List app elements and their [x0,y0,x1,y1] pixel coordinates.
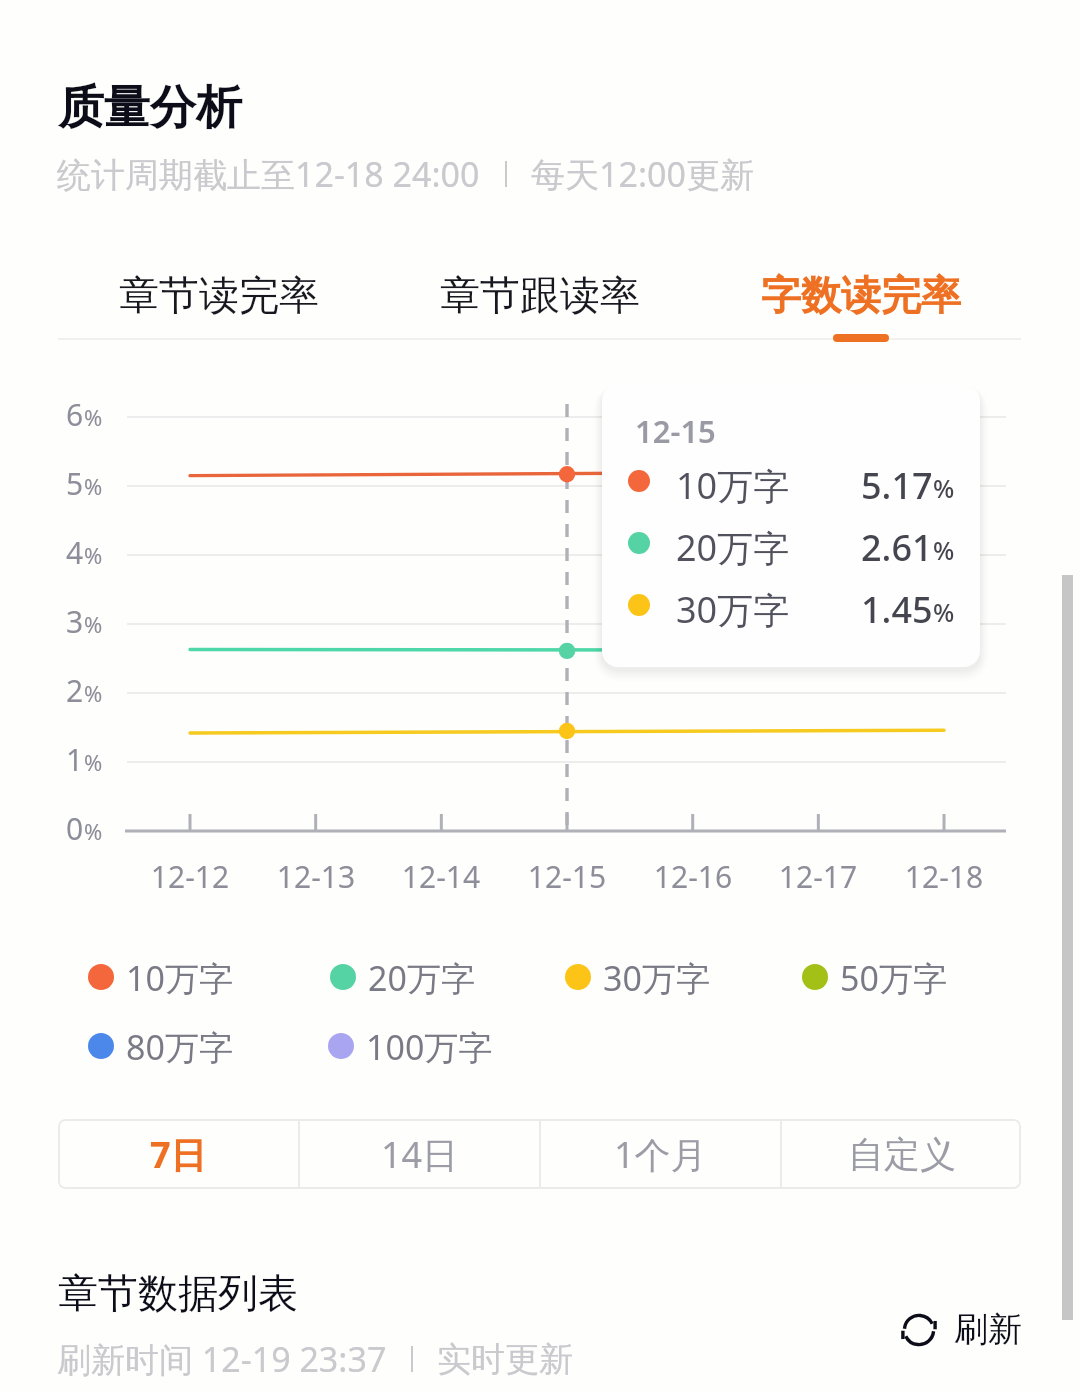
staticText: 30万字 [676,585,790,634]
staticText: 4 [66,532,84,573]
staticText: 80万字 [126,1024,233,1070]
staticText: 100万字 [366,1024,493,1070]
button[interactable]: 50万字 [797,951,957,1003]
staticText: 10万字 [126,955,233,1001]
staticText: 3 [66,601,84,642]
staticText: 每天12:00更新 [531,151,754,197]
staticText: 章节读完率 [119,270,319,320]
button[interactable]: 自定义 [782,1119,1021,1189]
button[interactable]: 章节跟读率 [410,240,668,338]
staticText: % [933,533,955,567]
staticText: 5.17 [861,461,933,510]
staticText: 20万字 [676,523,790,572]
button[interactable]: 刷新 [898,1304,1026,1355]
staticText: % [933,471,955,505]
staticText: 1.45 [861,585,933,634]
staticText: 1个月 [614,1130,707,1179]
staticText: % [84,816,103,846]
staticText: 刷新 [954,1308,1022,1351]
button[interactable]: 章节读完率 [89,240,347,338]
staticText: 质量分析 [58,79,242,137]
staticText: % [84,540,103,570]
staticText: % [84,609,103,639]
staticText: 12-17 [738,856,898,897]
button[interactable]: 1个月 [541,1119,780,1189]
staticText: % [84,402,103,432]
staticText: 20万字 [368,955,475,1001]
staticText: 12-16 [613,856,773,897]
button[interactable]: 20万字 [325,951,485,1003]
staticText: 12-15 [487,856,647,897]
staticText: 12-14 [361,856,521,897]
button[interactable]: 7日 [58,1119,298,1189]
button[interactable]: 10万字 [83,951,243,1003]
staticText: 7日 [150,1130,207,1179]
staticText: 2 [66,670,84,711]
staticText: % [84,678,103,708]
staticText: 章节数据列表 [58,1268,298,1318]
staticText: 12-13 [236,856,396,897]
button[interactable]: 100万字 [323,1020,483,1072]
staticText: 12-18 [864,856,1024,897]
staticText: 刷新时间 12-19 23:37 [57,1336,387,1382]
staticText: 章节跟读率 [440,270,640,320]
staticText: 50万字 [840,955,947,1001]
button[interactable]: 字数读完率 [731,240,989,338]
staticText: 0 [66,808,84,849]
staticText: 5 [66,463,84,504]
staticText: 12-15 [635,410,716,452]
staticText: % [84,471,103,501]
staticText: 14日 [381,1130,459,1179]
staticText: 1 [66,739,84,780]
button[interactable]: 80万字 [83,1020,243,1072]
staticText: 2.61 [861,523,933,572]
staticText: 实时更新 [437,1338,573,1381]
staticText: % [933,595,955,629]
staticText: 自定义 [848,1132,956,1177]
staticText: 10万字 [676,461,790,510]
staticText: 字数读完率 [761,270,961,320]
staticText: % [84,747,103,777]
button[interactable]: 14日 [300,1119,539,1189]
button[interactable]: 30万字 [560,951,720,1003]
staticText: 12-12 [110,856,270,897]
staticText: 30万字 [603,955,710,1001]
staticText: 6 [66,394,84,435]
staticText: 统计周期截止至12-18 24:00 [57,151,480,197]
